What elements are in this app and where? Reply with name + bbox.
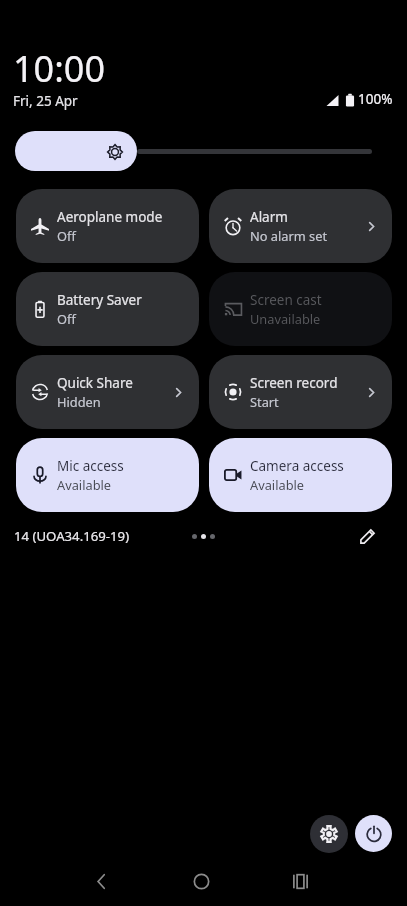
button[interactable]: Battery Saver	[16, 272, 199, 346]
staticText: Aeroplane mode	[57, 208, 163, 226]
staticText: Fri, 25 Apr	[13, 92, 78, 110]
staticText: Off	[57, 227, 76, 244]
staticText: Unavailable	[250, 310, 321, 327]
staticText: Battery Saver	[57, 291, 142, 309]
staticText: Camera access	[250, 457, 344, 475]
staticText: 14 (UOA34.169-19)	[14, 527, 130, 545]
button[interactable]: Brightness	[15, 131, 392, 171]
staticText: Mic access	[57, 457, 124, 475]
button[interactable]: Settings	[310, 815, 348, 853]
button[interactable]: Power	[355, 815, 392, 852]
button[interactable]: Recents	[276, 857, 324, 905]
button[interactable]: Screen cast	[209, 272, 392, 346]
button[interactable]: Quick Share	[16, 355, 199, 429]
staticText: Quick Share	[57, 374, 133, 392]
staticText: Hidden	[57, 393, 101, 410]
staticText: No alarm set	[250, 227, 327, 244]
button[interactable]: Mic access	[16, 438, 199, 512]
button[interactable]: Home	[177, 857, 225, 905]
button[interactable]: Edit tiles	[355, 524, 379, 548]
button[interactable]: Back	[77, 857, 125, 905]
button[interactable]: Aeroplane mode	[16, 189, 199, 263]
staticText: Alarm	[250, 208, 288, 226]
button[interactable]: Alarm	[209, 189, 392, 263]
button[interactable]: Camera access	[209, 438, 392, 512]
staticText: Screen record	[250, 374, 338, 392]
staticText: 10:00	[13, 44, 106, 93]
button[interactable]: Screen record	[209, 355, 392, 429]
staticText: Off	[57, 310, 76, 327]
staticText: Screen cast	[250, 291, 322, 309]
staticText: Available	[250, 476, 305, 493]
staticText: 100%	[358, 90, 393, 108]
staticText: Available	[57, 476, 112, 493]
staticText: Start	[250, 393, 279, 410]
